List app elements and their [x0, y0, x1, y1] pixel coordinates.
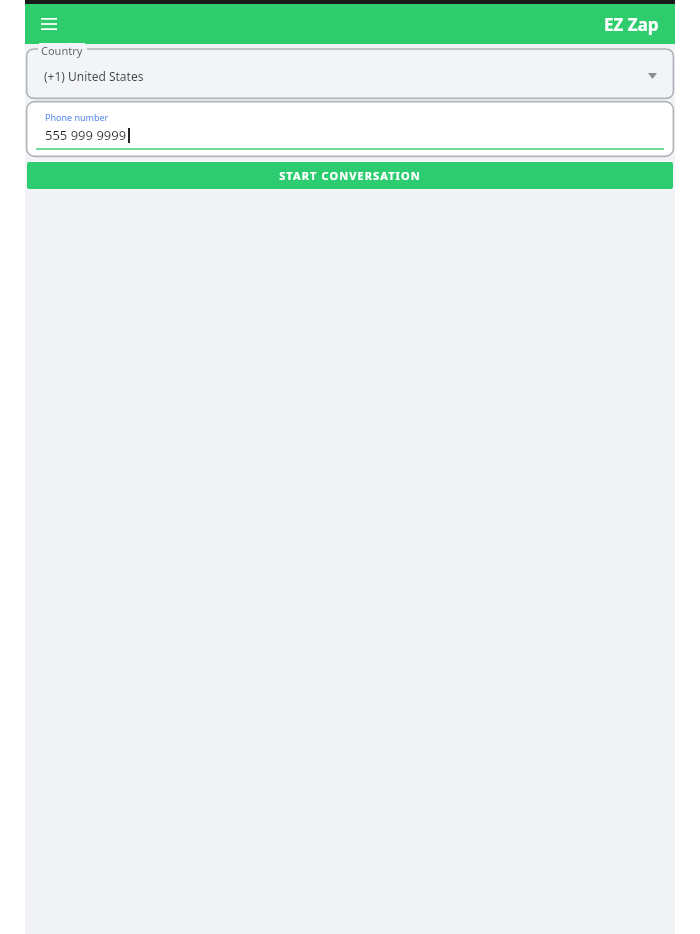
staticText: (+1) United States [44, 68, 144, 84]
button[interactable]: START CONVERSATION [27, 162, 673, 189]
button[interactable]: Country [25, 44, 675, 100]
staticText: 555 999 9999 [45, 126, 127, 144]
button[interactable]: Open navigation menu [33, 8, 65, 40]
button[interactable]: Phone number [25, 100, 675, 158]
staticText: EZ Zap [604, 13, 659, 36]
staticText: Country [41, 43, 83, 58]
staticText: Phone number [45, 111, 109, 123]
staticText: START CONVERSATION [279, 168, 421, 183]
